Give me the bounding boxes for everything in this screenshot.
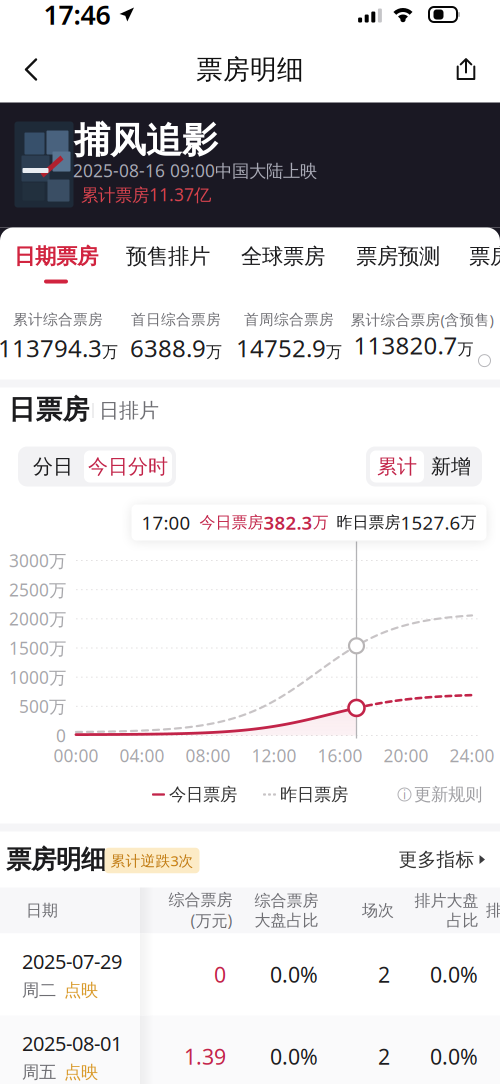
staticText: 0.0% [430,1042,478,1071]
button[interactable]: 预售排片 [118,230,218,286]
button[interactable]: 分日 [22,450,84,482]
button[interactable]: 全球票房 [233,230,333,286]
staticText: 万 [457,339,473,359]
staticText: 2025-08-01 [22,1030,122,1057]
staticText: 排片大盘 占比 [414,891,478,930]
staticText: 16:00 [317,744,362,767]
staticText: 0 [214,960,226,989]
staticText: 0.0% [430,960,478,989]
staticText: 昨日票房 [336,513,400,532]
staticText: 新增 [431,454,471,479]
staticText: 0 [56,724,66,747]
staticText: 万 [326,342,342,362]
staticText: 首日综合票房 [131,310,221,328]
staticText: 04:00 [119,744,164,767]
button[interactable]: 票房 [440,230,500,286]
staticText: 累计票房11.37亿 [81,183,211,206]
staticText: 全球票房 [241,243,325,270]
staticText: 1527.6 [400,510,460,535]
staticText: 昨日票房 [280,784,348,805]
staticText: 2500万 [9,578,66,601]
staticText: 17:46 [43,0,110,32]
staticText: 3000万 [9,549,66,572]
button[interactable]: Back [12,45,50,93]
staticText: 综合票房 (万元) [168,890,232,931]
staticText: 累计逆跌3次 [110,851,193,870]
button[interactable]: Share [442,45,489,93]
staticText: 票房明细 [196,53,304,86]
staticText: 1500万 [9,636,66,659]
staticText: 2000万 [9,607,66,630]
staticText: 0.0% [270,960,318,989]
staticText: 排 [486,901,500,920]
staticText: 113820.7 [353,329,457,361]
staticText: i [403,786,406,802]
staticText: 周二 [22,980,56,1001]
staticText: 累计综合票房 [13,310,103,328]
staticText: 2025-08-16 09:00中国大陆上映 [73,159,317,182]
staticText: 点映 [64,1062,98,1083]
staticText: 今日分时 [88,454,168,479]
staticText: 点映 [64,980,98,1001]
staticText: 2025-07-29 [22,948,122,975]
staticText: 17:00 [141,510,190,535]
button[interactable]: 票房预测 [348,230,448,286]
staticText: 2 [378,960,390,989]
staticText: 首周综合票房 [244,310,334,328]
staticText: 382.3 [263,510,312,535]
staticText: 万 [312,513,328,532]
button[interactable]: 日排片 [99,398,159,423]
button[interactable]: i [398,784,482,805]
staticText: 日期票房 [14,243,98,270]
button[interactable]: 2025-07-29 [0,933,500,1015]
staticText: 更新规则 [414,784,482,805]
staticText: 票房 [469,243,500,270]
staticText: 万 [102,342,118,362]
staticText: 今日票房 [199,513,263,532]
staticText: 113794.3 [0,332,102,364]
staticText: 日排片 [99,398,159,423]
staticText: 万 [206,342,222,362]
button[interactable]: 日期票房 [6,230,106,286]
staticText: 2 [378,1042,390,1071]
staticText: 1000万 [9,666,66,689]
staticText: 08:00 [185,744,230,767]
button[interactable]: 更多指标 [398,848,485,871]
button[interactable]: 日票房 [8,393,89,426]
staticText: 票房明细 [6,844,106,875]
staticText: 12:00 [251,744,296,767]
staticText: 万 [460,513,476,532]
staticText: 1.39 [184,1042,226,1071]
staticText: 场次 [362,901,394,920]
staticText: 0.0% [270,1042,318,1071]
staticText: 6388.9 [130,332,206,364]
staticText: 捕风追影 [74,118,218,163]
button[interactable]: 累计 [370,450,424,482]
staticText: 24:00 [449,744,494,767]
staticText: 周五 [22,1062,56,1083]
staticText: 500万 [19,695,66,718]
staticText: 日票房 [8,393,89,426]
staticText: 票房预测 [356,243,440,270]
staticText: 00:00 [53,744,98,767]
staticText: 更多指标 [398,848,474,871]
staticText: 日期 [26,901,58,920]
staticText: 14752.9 [236,332,326,364]
button[interactable]: 今日分时 [84,450,172,482]
staticText: 累计 [377,454,417,479]
staticText: 累计综合票房(含预售) [350,310,493,329]
staticText: 预售排片 [126,243,210,270]
staticText: 20:00 [383,744,428,767]
staticText: 综合票房 大盘占比 [254,891,318,930]
staticText: 今日票房 [169,784,237,805]
staticText: 分日 [33,454,73,479]
button[interactable]: 新增 [424,450,478,482]
button[interactable]: 2025-08-01 [0,1015,500,1084]
